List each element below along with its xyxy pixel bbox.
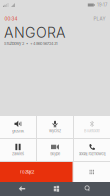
staticText: Bluetooth xyxy=(84,129,100,133)
button[interactable]: wycisz xyxy=(37,116,73,138)
staticText: rozłącz xyxy=(20,169,34,175)
staticText: dodaj rozmówcę xyxy=(78,152,105,156)
staticText: wycisz xyxy=(49,129,61,133)
button[interactable]: Keypad xyxy=(73,162,110,182)
button[interactable]: Skype xyxy=(37,139,73,161)
staticText: Skype xyxy=(50,151,60,156)
staticText: zawieś xyxy=(12,152,24,156)
staticText: 19:17 xyxy=(97,2,107,8)
button[interactable]: dodaj rozmówcę xyxy=(74,139,110,161)
staticText: ANGORA xyxy=(4,24,66,41)
staticText: PLAY xyxy=(93,16,105,21)
button[interactable]: głośnik xyxy=(0,116,36,138)
button[interactable]: rozłącz xyxy=(0,162,72,182)
staticText: głośnik xyxy=(12,129,24,134)
staticText: 00:34 xyxy=(4,16,17,22)
button[interactable]: zawieś xyxy=(0,139,36,161)
button[interactable]: Bluetooth xyxy=(74,116,110,138)
staticText: Służbowy 2 • +48605672431 xyxy=(4,41,58,46)
